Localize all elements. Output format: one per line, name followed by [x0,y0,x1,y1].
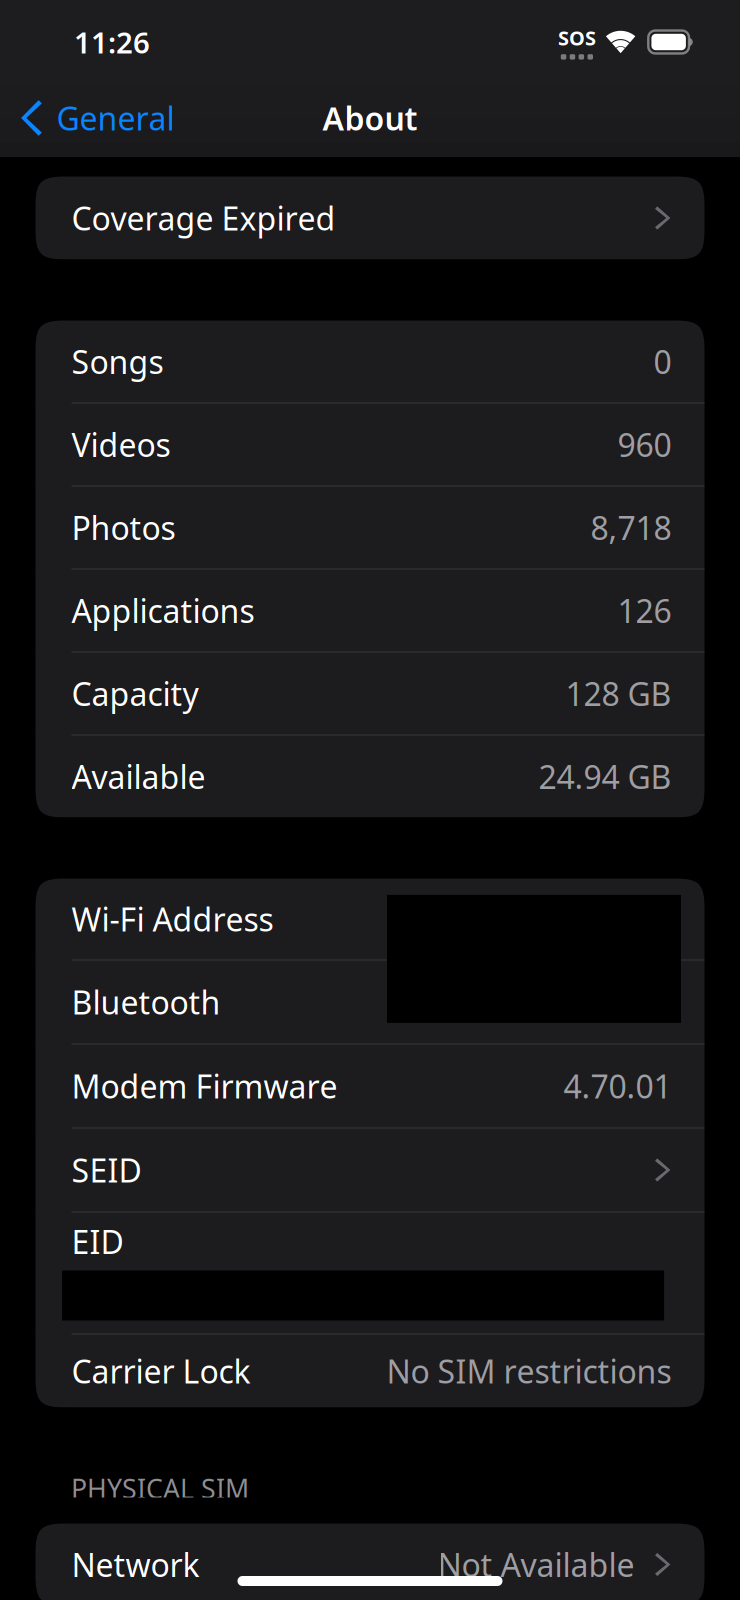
button[interactable]: Capacity [35,652,704,734]
staticText: 126 [617,589,671,632]
staticText: 960 [617,423,671,466]
staticText: Videos [71,423,170,466]
staticText: General [56,97,174,139]
staticText: 0 [653,340,671,383]
staticText: Coverage Expired [71,197,335,239]
staticText: SOS [558,24,596,51]
button[interactable]: Available [35,735,704,817]
staticText: 4.70.01 [563,1065,671,1107]
button[interactable]: Applications [35,569,704,651]
button[interactable]: Songs [35,320,704,402]
staticText: No SIM restrictions [386,1350,671,1392]
staticText: 24.94 GB [538,755,671,798]
staticText: SEID [71,1149,141,1191]
button[interactable]: Modem Firmware [35,1044,704,1127]
staticText: PHYSICAL SIM [71,1471,249,1506]
staticText: Applications [71,589,254,632]
button[interactable]: General [0,79,188,157]
button[interactable]: Carrier Lock [35,1334,704,1407]
staticText: Modem Firmware [71,1065,337,1107]
staticText: Available [71,755,205,798]
button[interactable]: Network [35,1523,704,1600]
staticText: Network [71,1543,199,1586]
button[interactable]: Coverage Expired [35,176,704,259]
staticText: Wi-Fi Address [71,898,273,940]
button[interactable]: Videos [35,403,704,485]
staticText: Carrier Lock [71,1350,250,1392]
staticText: Photos [71,506,175,549]
staticText: About [322,97,417,139]
staticText: 8,718 [590,506,671,549]
staticText: Capacity [71,672,198,715]
button[interactable]: EID [35,1212,704,1333]
button[interactable]: SEID [35,1128,704,1211]
button[interactable]: Bluetooth [35,960,704,1043]
staticText: Not Available [437,1543,634,1586]
staticText: 11:26 [74,22,150,61]
staticText: EID [71,1220,123,1263]
button[interactable]: Photos [35,486,704,568]
staticText: Bluetooth [71,981,220,1023]
button[interactable]: Wi-Fi Address [35,878,704,959]
staticText: 128 GB [565,672,671,715]
staticText: Songs [71,340,163,383]
